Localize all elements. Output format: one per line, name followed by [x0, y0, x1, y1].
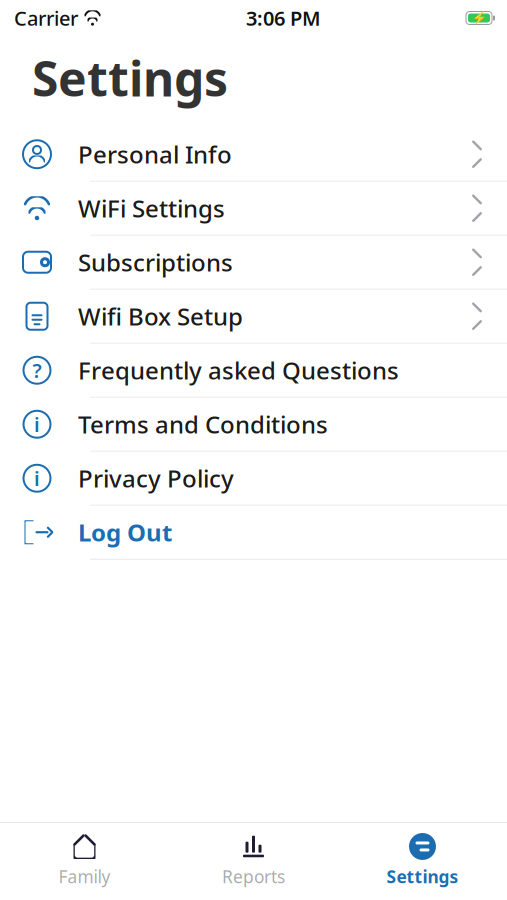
button[interactable]: i: [0, 398, 507, 452]
staticText: Log Out: [78, 516, 172, 548]
button[interactable]: ?: [0, 344, 507, 398]
button[interactable]: Subscriptions: [0, 236, 507, 290]
button[interactable]: Personal Info: [0, 128, 507, 182]
staticText: Settings: [32, 46, 228, 110]
button[interactable]: Family: [0, 823, 169, 900]
staticText: Personal Info: [78, 138, 232, 170]
button[interactable]: WiFi Settings: [0, 182, 507, 236]
staticText: Subscriptions: [78, 246, 233, 278]
staticText: Reports: [222, 865, 285, 888]
staticText: WiFi Settings: [78, 192, 225, 224]
button[interactable]: Log Out: [0, 506, 507, 560]
staticText: ⚡: [471, 11, 486, 25]
button[interactable]: Reports: [169, 823, 338, 900]
staticText: Frequently asked Questions: [78, 354, 399, 386]
button[interactable]: i: [0, 452, 507, 506]
staticText: 3:06 PM: [246, 5, 321, 31]
staticText: ?: [32, 357, 41, 384]
staticText: i: [34, 411, 40, 438]
staticText: Carrier: [14, 5, 78, 31]
staticText: Terms and Conditions: [78, 408, 328, 440]
staticText: Family: [58, 865, 110, 888]
button[interactable]: Settings: [338, 823, 507, 900]
staticText: Privacy Policy: [78, 462, 234, 494]
staticText: Settings: [386, 865, 458, 888]
staticText: i: [34, 465, 40, 492]
staticText: Wifi Box Setup: [78, 300, 243, 332]
button[interactable]: Wifi Box Setup: [0, 290, 507, 344]
